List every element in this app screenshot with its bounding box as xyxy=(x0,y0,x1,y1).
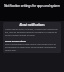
staticText: Notification settings for apps and syste… xyxy=(2,4,62,8)
staticText: More information xyxy=(5,39,59,42)
staticText: Lorem ipsum dolor sit amet, consectetur … xyxy=(5,28,59,37)
staticText: About notifications xyxy=(5,23,59,27)
staticText: Sed ut perspiciatis unde omnis iste natu… xyxy=(5,43,59,52)
